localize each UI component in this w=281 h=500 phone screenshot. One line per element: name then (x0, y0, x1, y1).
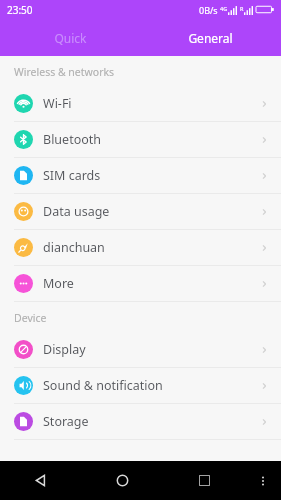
staticText: Quick (54, 30, 87, 46)
button[interactable]: Home (81, 461, 163, 500)
button[interactable]: Display (0, 332, 281, 367)
staticText: dianchuan (43, 239, 105, 256)
staticText: 23:50 (7, 3, 33, 17)
staticText: 0B/s (199, 4, 218, 16)
staticText: 4G (220, 5, 228, 12)
staticText: Storage (43, 413, 89, 430)
button[interactable]: SIM cards (0, 158, 281, 193)
staticText: Sound & notification (43, 377, 163, 394)
staticText: Device (14, 311, 47, 325)
button[interactable]: More (0, 266, 281, 301)
staticText: Bluetooth (43, 131, 102, 148)
button[interactable]: Quick (0, 19, 140, 56)
staticText: Data usage (43, 203, 110, 220)
button[interactable]: Data usage (0, 194, 281, 229)
button[interactable]: Wi-Fi (0, 86, 281, 121)
staticText: General (188, 30, 233, 46)
button[interactable]: Sound & notification (0, 368, 281, 403)
staticText: More (43, 275, 74, 292)
staticText: Wi-Fi (43, 95, 72, 112)
staticText: SIM cards (43, 167, 101, 184)
button[interactable]: Recent apps (163, 461, 245, 500)
button[interactable]: Back (0, 461, 81, 500)
button[interactable]: Storage (0, 404, 281, 439)
button[interactable]: dianchuan (0, 230, 281, 265)
button[interactable]: Bluetooth (0, 122, 281, 157)
staticText: R (240, 5, 244, 12)
button[interactable]: General (140, 19, 281, 56)
staticText: Display (43, 341, 86, 358)
button[interactable]: More options (245, 461, 281, 500)
staticText: Wireless & networks (14, 65, 115, 79)
